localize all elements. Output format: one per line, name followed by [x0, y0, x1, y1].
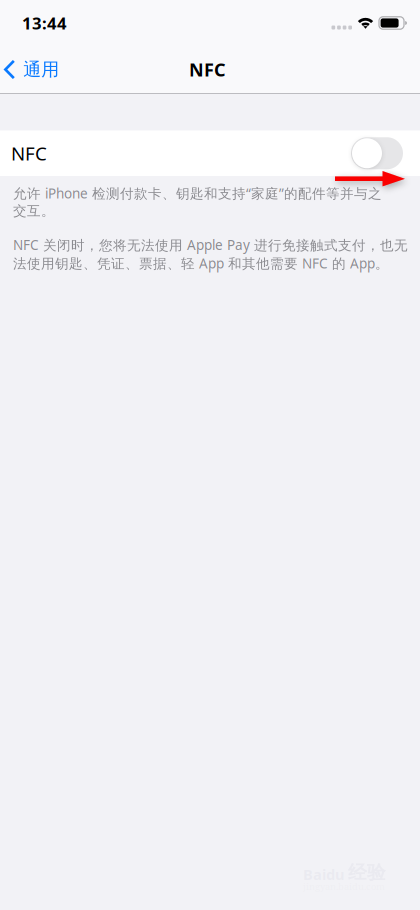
staticText: 允许 iPhone 检测付款卡、钥匙和支持“家庭”的配件等并与之 交互。	[13, 184, 382, 219]
staticText: Baidu	[303, 864, 345, 884]
staticText: NFC	[11, 140, 47, 166]
staticText: 经验	[348, 861, 386, 884]
staticText: NFC	[189, 57, 226, 82]
staticText: NFC 关闭时，您将无法使用 Apple Pay 进行免接触式支付，也无 法使用…	[13, 235, 408, 272]
button[interactable]: NFC	[351, 137, 403, 169]
button[interactable]: 通用	[0, 51, 69, 88]
staticText: 通用	[23, 58, 59, 81]
staticText: 13:44	[22, 12, 67, 34]
